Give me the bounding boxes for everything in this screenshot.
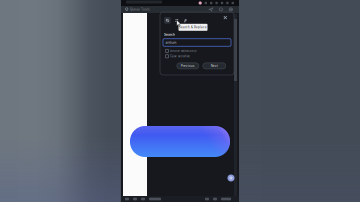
button[interactable]: Regular expression <box>182 17 189 24</box>
staticText: Previous <box>181 64 195 68</box>
button[interactable]: Next <box>203 63 226 69</box>
button[interactable]: Send <box>209 7 213 11</box>
staticText: Queue Tools <box>130 8 150 11</box>
staticText: Search & Replace <box>179 26 207 29</box>
button[interactable]: Search and Replace <box>173 17 180 24</box>
staticText: Whole words only <box>170 49 197 52</box>
button[interactable]: Case sensitive <box>165 54 192 58</box>
button[interactable]: Previous <box>177 63 199 69</box>
button[interactable]: Comments <box>219 7 223 11</box>
button[interactable]: Close <box>222 14 229 21</box>
staticText: antium <box>165 40 176 44</box>
staticText: Search <box>164 32 175 37</box>
button[interactable]: Settings <box>229 7 233 12</box>
button[interactable]: Queue Tools <box>125 7 150 11</box>
button[interactable]: Whole words only <box>165 49 197 53</box>
button[interactable]: Find <box>164 17 171 24</box>
staticText: Case sensitive <box>170 55 190 58</box>
staticText: Next <box>211 64 218 68</box>
